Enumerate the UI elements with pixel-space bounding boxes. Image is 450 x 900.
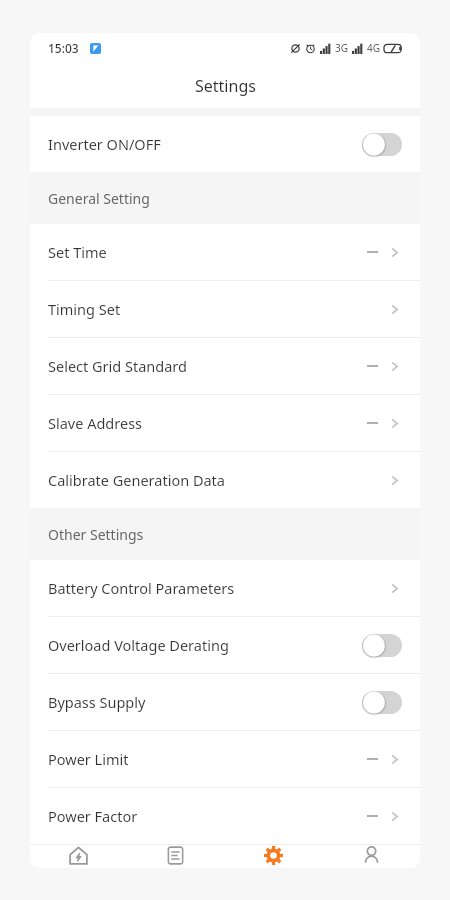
button[interactable]: Power Limit: [30, 731, 420, 787]
button[interactable]: Battery Control Parameters: [30, 560, 420, 616]
button[interactable]: Inverter ON/OFF: [30, 116, 420, 172]
staticText: Timing Set: [48, 299, 387, 319]
staticText: Settings: [195, 75, 256, 97]
button[interactable]: Timing Set: [30, 281, 420, 337]
staticText: Calibrate Generation Data: [48, 470, 387, 490]
staticText: Set Time: [48, 242, 367, 262]
button[interactable]: Slave Address: [30, 395, 420, 451]
staticText: Select Grid Standard: [48, 356, 367, 376]
staticText: 15:03: [48, 40, 79, 56]
staticText: General Setting: [48, 189, 150, 208]
button[interactable]: Home: [30, 845, 127, 868]
staticText: Other Settings: [48, 525, 144, 544]
staticText: Bypass Supply: [48, 692, 362, 712]
staticText: Battery Control Parameters: [48, 578, 387, 598]
staticText: Power Limit: [48, 749, 367, 769]
staticText: Slave Address: [48, 413, 367, 433]
button[interactable]: Settings: [224, 845, 322, 868]
button[interactable]: Set Time: [30, 224, 420, 280]
button[interactable]: Overload Voltage Derating: [30, 617, 420, 673]
staticText: Power Factor: [48, 806, 367, 826]
button[interactable]: Power Factor: [30, 788, 420, 844]
button[interactable]: Information: [127, 845, 224, 868]
staticText: 4G: [367, 41, 380, 55]
button[interactable]: Me: [322, 845, 420, 868]
staticText: Inverter ON/OFF: [48, 134, 362, 154]
staticText: Overload Voltage Derating: [48, 635, 362, 655]
staticText: 3G: [335, 41, 348, 55]
button[interactable]: Select Grid Standard: [30, 338, 420, 394]
button[interactable]: Bypass Supply: [30, 674, 420, 730]
button[interactable]: Calibrate Generation Data: [30, 452, 420, 508]
